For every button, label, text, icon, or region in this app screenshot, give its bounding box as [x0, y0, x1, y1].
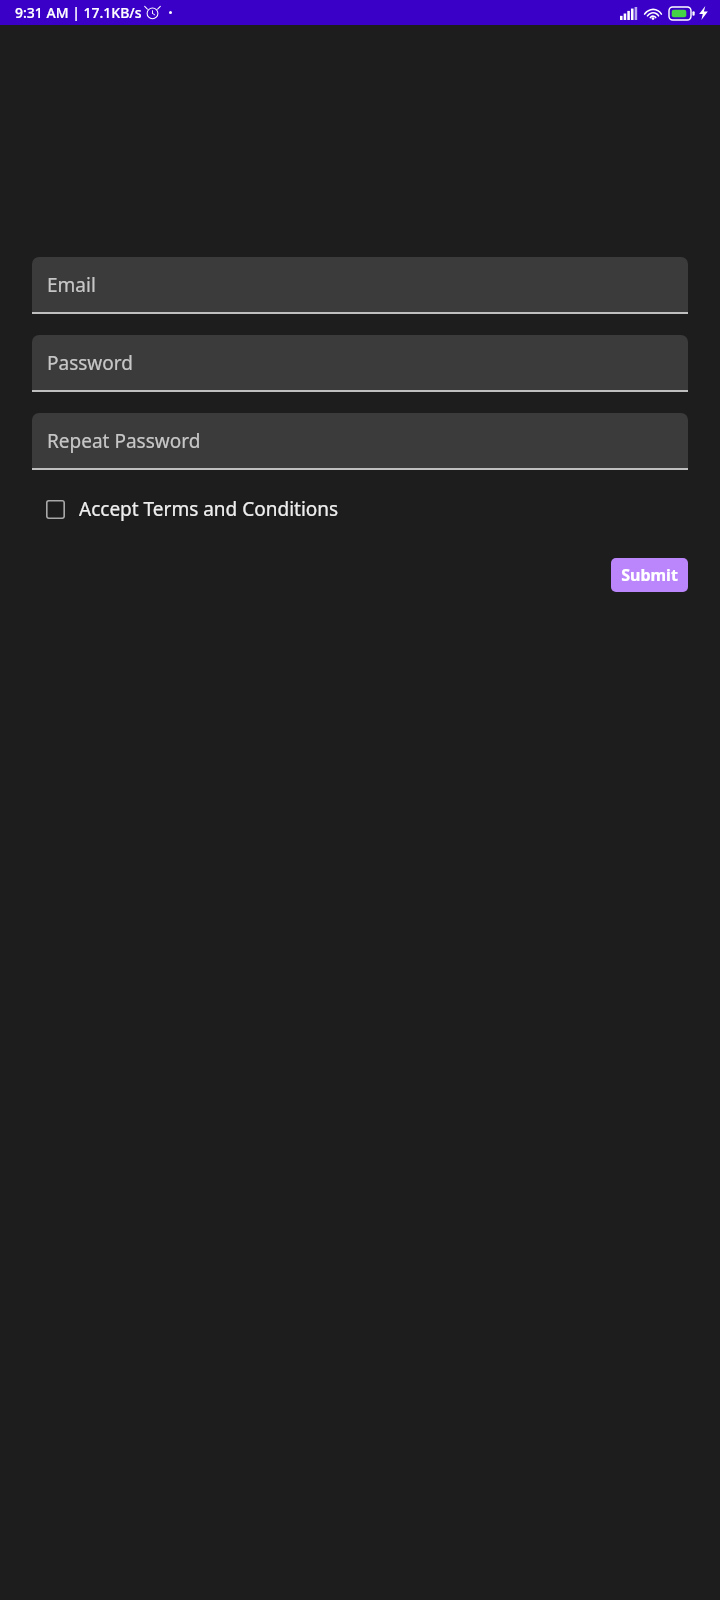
staticText: Password	[47, 350, 133, 376]
staticText: Submit	[621, 564, 678, 586]
staticText: 9:31 AM | 17.1KB/s	[15, 3, 142, 22]
staticText: Email	[47, 272, 96, 298]
staticText: Accept Terms and Conditions	[79, 496, 339, 522]
button[interactable]: Submit	[611, 558, 688, 592]
button[interactable]: Repeat Password	[32, 413, 688, 470]
button[interactable]: Accept Terms and Conditions	[32, 486, 339, 532]
button[interactable]: Password	[32, 335, 688, 392]
button[interactable]: Email	[32, 257, 688, 314]
staticText: Repeat Password	[47, 428, 201, 454]
